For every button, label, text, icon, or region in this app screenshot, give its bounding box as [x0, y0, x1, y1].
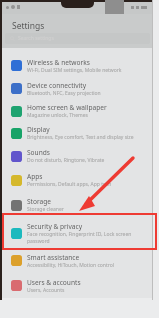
staticText: Home screen & wallpaper: [27, 103, 107, 112]
staticText: Permissions, Default apps, App twin: [27, 181, 112, 188]
staticText: Do not disturb, Ringtone, Vibrate: [27, 157, 105, 164]
staticText: Bluetooth, NFC, Easy projection: [27, 90, 101, 97]
staticText: Brightness, Eye comfort, Text and displa…: [27, 134, 134, 141]
staticText: Sounds: [27, 148, 50, 157]
staticText: Smart assistance: [27, 253, 80, 262]
staticText: Storage cleaner: [27, 206, 64, 213]
staticText: Users & accounts: [27, 278, 81, 287]
staticText: Apps: [27, 172, 43, 181]
staticText: Face recognition, Fingerprint ID, Lock s…: [27, 231, 132, 244]
button[interactable]: Apps: [2, 168, 153, 192]
staticText: Wi-Fi, Dual SIM settings, Mobile network: [27, 67, 122, 74]
button[interactable]: Security & privacy: [2, 218, 153, 248]
button[interactable]: Users & accounts: [2, 273, 153, 298]
staticText: Storage: [27, 197, 52, 206]
staticText: Wireless & networks: [27, 58, 90, 67]
button[interactable]: Sounds: [2, 144, 153, 168]
staticText: Accessibility, HiTouch, Motion control: [27, 262, 114, 269]
staticText: Users, Accounts: [27, 287, 65, 294]
button[interactable]: Wireless & networks: [2, 54, 153, 77]
staticText: Display: [27, 125, 50, 134]
staticText: Magazine unlock, Themes: [27, 112, 88, 119]
staticText: Settings: [12, 20, 45, 32]
staticText: Security & privacy: [27, 222, 83, 231]
button[interactable]: Display: [2, 122, 153, 144]
button[interactable]: Device connectivity: [2, 77, 153, 100]
button[interactable]: Smart assistance: [2, 248, 153, 273]
button[interactable]: Home screen & wallpaper: [2, 100, 153, 122]
button[interactable]: Storage: [2, 192, 153, 218]
staticText: Device connectivity: [27, 81, 87, 90]
